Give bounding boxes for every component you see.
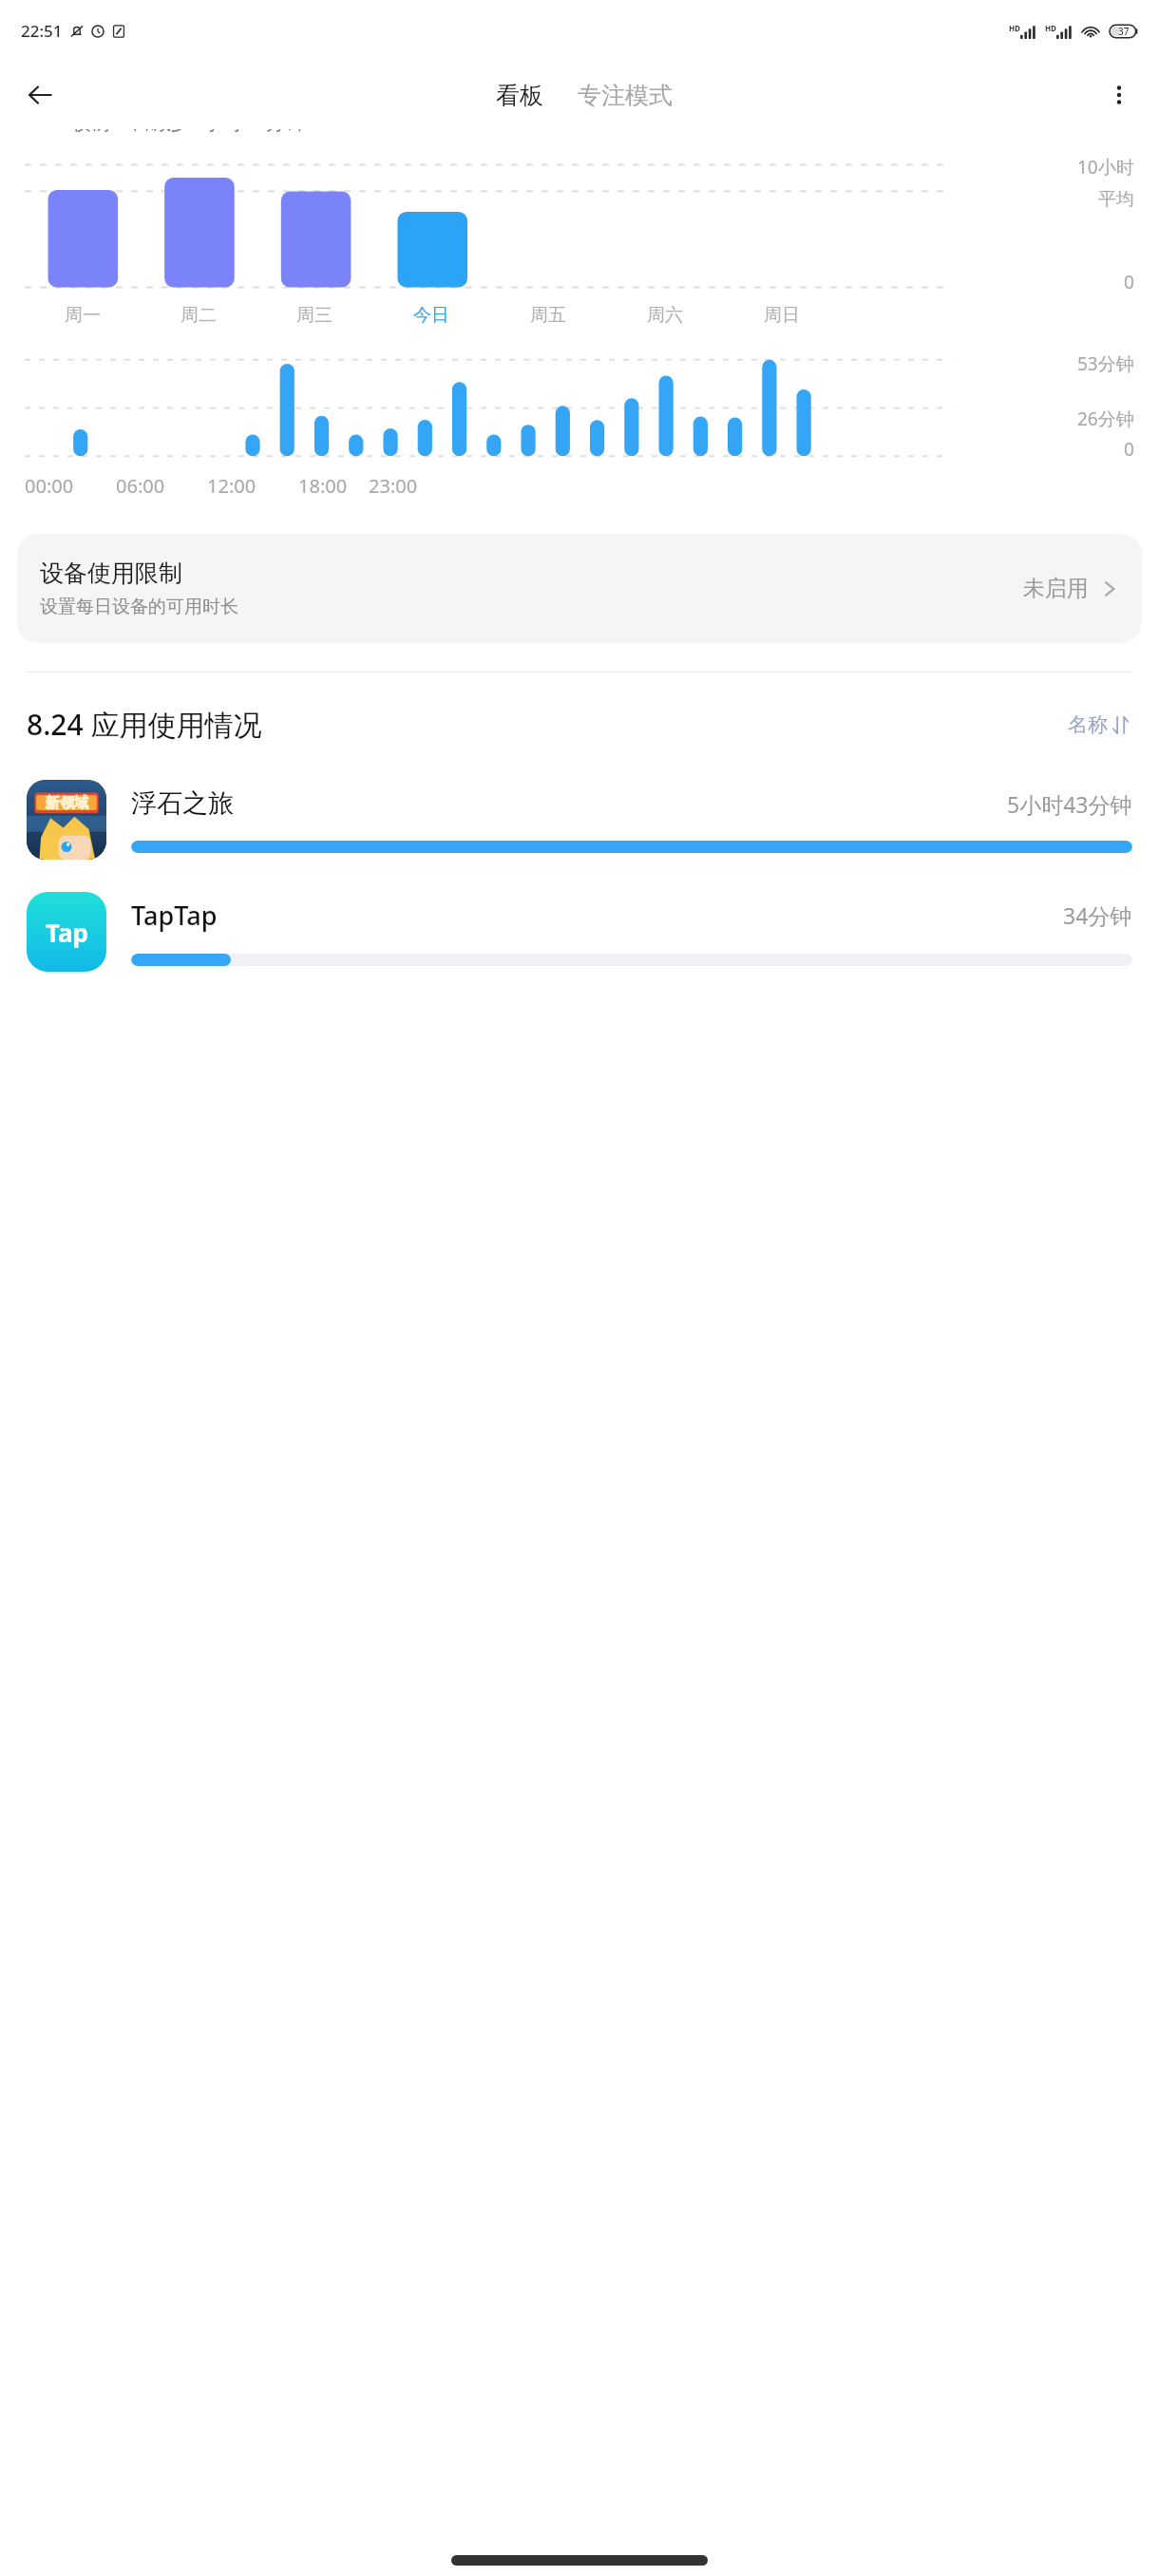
staticText: Tap xyxy=(46,916,88,949)
staticText: 名称 xyxy=(1068,712,1108,737)
staticText: 设置每日设备的可用时长 xyxy=(40,596,238,618)
staticText: 8.24 应用使用情况 xyxy=(27,705,262,744)
staticText: 看板 xyxy=(496,81,543,110)
button[interactable]: 新领域 xyxy=(0,776,1159,863)
staticText: 34分钟 xyxy=(1063,900,1132,930)
button[interactable]: 周一 xyxy=(61,300,104,331)
button[interactable]: 周二 xyxy=(177,300,220,331)
button[interactable]: 设备使用限制 xyxy=(17,534,1142,643)
staticText: 53分钟 xyxy=(1077,351,1134,376)
staticText: 专注模式 xyxy=(578,81,673,110)
staticText: 22:51 xyxy=(21,20,63,42)
staticText: 新领域 xyxy=(46,794,88,812)
staticText: 周六 xyxy=(647,304,683,327)
staticText: 37 xyxy=(1118,25,1130,38)
staticText: 周一 xyxy=(65,304,101,327)
staticText: 周日 xyxy=(764,304,800,327)
staticText: 10小时 xyxy=(1077,155,1134,180)
staticText: 23:00 xyxy=(369,473,418,499)
staticText: 周五 xyxy=(530,304,566,327)
button[interactable]: 专注模式 xyxy=(572,81,678,110)
staticText: 5小时43分钟 xyxy=(1007,789,1132,819)
button[interactable]: 更多选项 xyxy=(1092,68,1146,122)
staticText: 周三 xyxy=(296,304,332,327)
staticText: 8.24 较前一日减少1小时37分钟 xyxy=(27,129,306,133)
staticText: 今日 xyxy=(413,304,449,327)
button[interactable]: 周五 xyxy=(526,300,570,331)
staticText: 未启用 xyxy=(1023,575,1089,602)
staticText: 平均 xyxy=(1098,188,1134,211)
staticText: 0 xyxy=(1124,270,1134,294)
staticText: 周二 xyxy=(180,304,217,327)
staticText: 26分钟 xyxy=(1077,407,1134,431)
staticText: 00:00 xyxy=(25,473,74,499)
button[interactable]: 周六 xyxy=(643,300,687,331)
button[interactable]: 今日 xyxy=(409,300,453,331)
staticText: 0 xyxy=(1124,437,1134,462)
staticText: HD xyxy=(1009,23,1020,33)
staticText: 18:00 xyxy=(298,473,348,499)
button[interactable]: 名称 xyxy=(1064,709,1132,741)
staticText: 浮石之旅 xyxy=(131,787,234,820)
button[interactable]: 看板 xyxy=(490,81,549,110)
button[interactable]: 周三 xyxy=(293,300,336,331)
button[interactable]: Tap xyxy=(0,888,1159,975)
staticText: TapTap xyxy=(131,898,218,933)
button[interactable]: 周日 xyxy=(760,300,804,331)
staticText: 12:00 xyxy=(207,473,256,499)
button[interactable]: 返回 xyxy=(13,68,66,122)
staticText: 设备使用限制 xyxy=(40,559,182,588)
staticText: HD xyxy=(1045,23,1056,33)
staticText: 06:00 xyxy=(116,473,165,499)
